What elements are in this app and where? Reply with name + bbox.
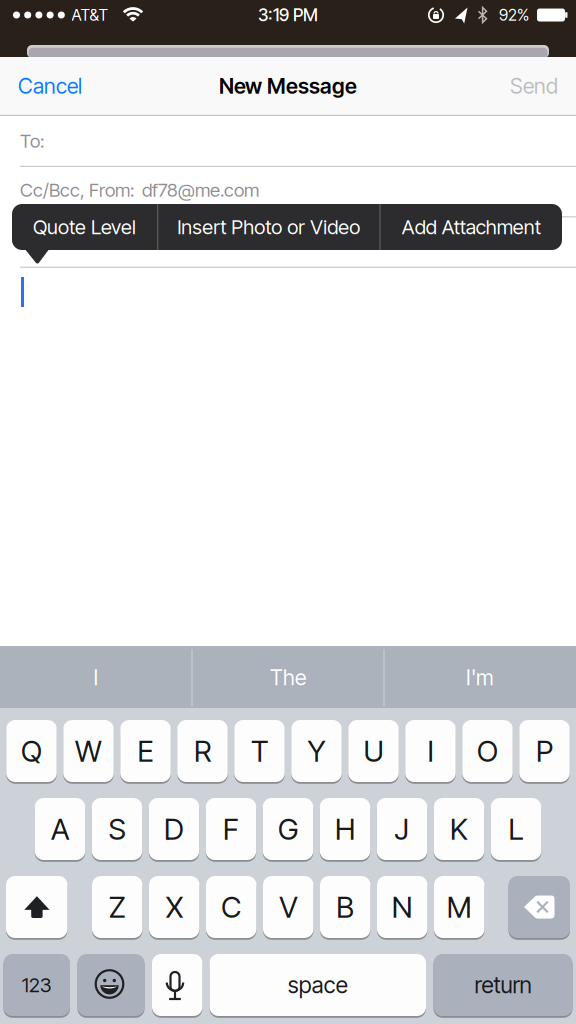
staticText: L [508, 811, 523, 847]
staticText: AT&T [71, 5, 108, 25]
button[interactable]: C [206, 876, 256, 938]
staticText: The [270, 665, 306, 690]
button[interactable]: Dictate [152, 954, 202, 1016]
staticText: Z [109, 889, 126, 925]
button[interactable]: Insert Photo or Video [158, 204, 379, 250]
button[interactable]: Y [291, 720, 342, 782]
button[interactable]: D [149, 798, 199, 860]
button[interactable]: O [462, 720, 513, 782]
staticText: B [336, 889, 354, 925]
button[interactable]: K [434, 798, 484, 860]
button[interactable]: X [149, 876, 199, 938]
button[interactable]: V [263, 876, 313, 938]
staticText: F [223, 811, 239, 847]
staticText: E [137, 733, 153, 769]
button[interactable]: I [1, 646, 191, 709]
staticText: I'm [466, 665, 494, 690]
staticText: J [394, 811, 409, 847]
button[interactable]: Add Attachment [381, 204, 562, 250]
button[interactable]: Delete [508, 876, 570, 938]
button[interactable]: W [63, 720, 114, 782]
button[interactable]: Q [6, 720, 57, 782]
staticText: Add Attachment [402, 215, 541, 239]
button[interactable]: space [209, 954, 426, 1016]
staticText: O [477, 733, 498, 769]
staticText: C [221, 889, 241, 925]
button[interactable]: F [206, 798, 256, 860]
staticText: Cc/Bcc, From: df78@me.com [20, 179, 259, 201]
staticText: Send [510, 73, 558, 99]
button[interactable]: P [519, 720, 570, 782]
button[interactable]: T [234, 720, 285, 782]
button[interactable]: Numbers [3, 954, 70, 1016]
button[interactable]: G [263, 798, 313, 860]
button[interactable]: To [0, 116, 576, 166]
button[interactable]: M [434, 876, 484, 938]
staticText: Cancel [18, 73, 82, 99]
button[interactable]: Send [510, 73, 558, 99]
staticText: New Message [219, 73, 357, 99]
staticText: Insert Photo or Video [177, 215, 360, 239]
staticText: N [392, 889, 413, 925]
button[interactable]: E [120, 720, 171, 782]
button[interactable]: Quote Level [12, 204, 157, 250]
button[interactable]: N [377, 876, 427, 938]
staticText: I [93, 665, 98, 690]
staticText: U [363, 733, 383, 769]
button[interactable]: J [377, 798, 427, 860]
button[interactable]: Z [92, 876, 142, 938]
staticText: D [164, 811, 184, 847]
staticText: W [75, 733, 102, 769]
button[interactable]: B [320, 876, 370, 938]
button[interactable]: I'm [385, 646, 575, 709]
staticText: R [194, 733, 211, 769]
staticText: 3:19 PM [258, 4, 318, 25]
staticText: G [278, 811, 298, 847]
staticText: 123 [22, 973, 52, 997]
staticText: K [450, 811, 468, 847]
staticText: Q [21, 733, 42, 769]
staticText: A [51, 811, 69, 847]
button[interactable]: Cc/Bcc, From [0, 171, 576, 209]
button[interactable]: return [433, 954, 572, 1016]
staticText: space [288, 971, 348, 999]
button[interactable]: H [320, 798, 370, 860]
staticText: P [536, 733, 553, 769]
staticText: M [447, 889, 472, 925]
button[interactable]: L [491, 798, 541, 860]
staticText: Y [307, 733, 325, 769]
staticText: T [251, 733, 268, 769]
staticText: X [166, 889, 183, 925]
button[interactable]: A [35, 798, 85, 860]
staticText: V [279, 889, 297, 925]
staticText: S [108, 811, 125, 847]
staticText: H [335, 811, 355, 847]
staticText: return [474, 971, 531, 999]
button[interactable]: R [177, 720, 228, 782]
button[interactable]: Cancel [18, 73, 82, 99]
staticText: Quote Level [33, 215, 136, 239]
button[interactable]: Emoji [77, 954, 144, 1016]
staticText: To: [20, 130, 44, 152]
button[interactable]: S [92, 798, 142, 860]
button[interactable]: U [348, 720, 399, 782]
button[interactable]: Shift [6, 876, 67, 938]
staticText: I [427, 733, 433, 769]
button[interactable]: I [405, 720, 456, 782]
staticText: 92% [499, 5, 529, 25]
button[interactable]: The [193, 646, 383, 709]
